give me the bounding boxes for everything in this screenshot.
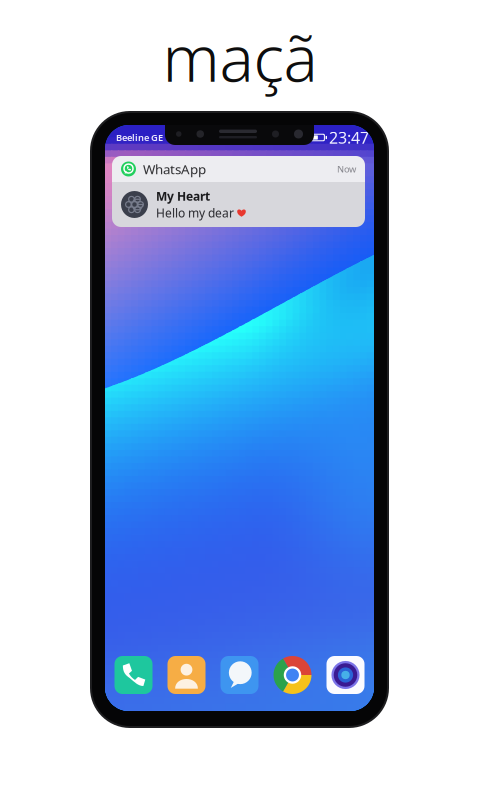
staticText: My Heart <box>156 188 210 204</box>
button[interactable]: Contacts <box>167 656 205 694</box>
staticText: Now <box>337 163 356 175</box>
button[interactable]: Phone <box>114 656 152 694</box>
staticText: 23:47 <box>329 127 369 148</box>
staticText: maçã <box>162 14 317 99</box>
staticText: WhatsApp <box>143 160 206 178</box>
button[interactable]: Chrome <box>273 656 311 694</box>
staticText: Hello my dear <box>156 205 234 221</box>
button[interactable]: Camera <box>326 656 364 694</box>
staticText: Beeline GE <box>116 131 163 144</box>
button[interactable]: Messages <box>220 656 258 694</box>
